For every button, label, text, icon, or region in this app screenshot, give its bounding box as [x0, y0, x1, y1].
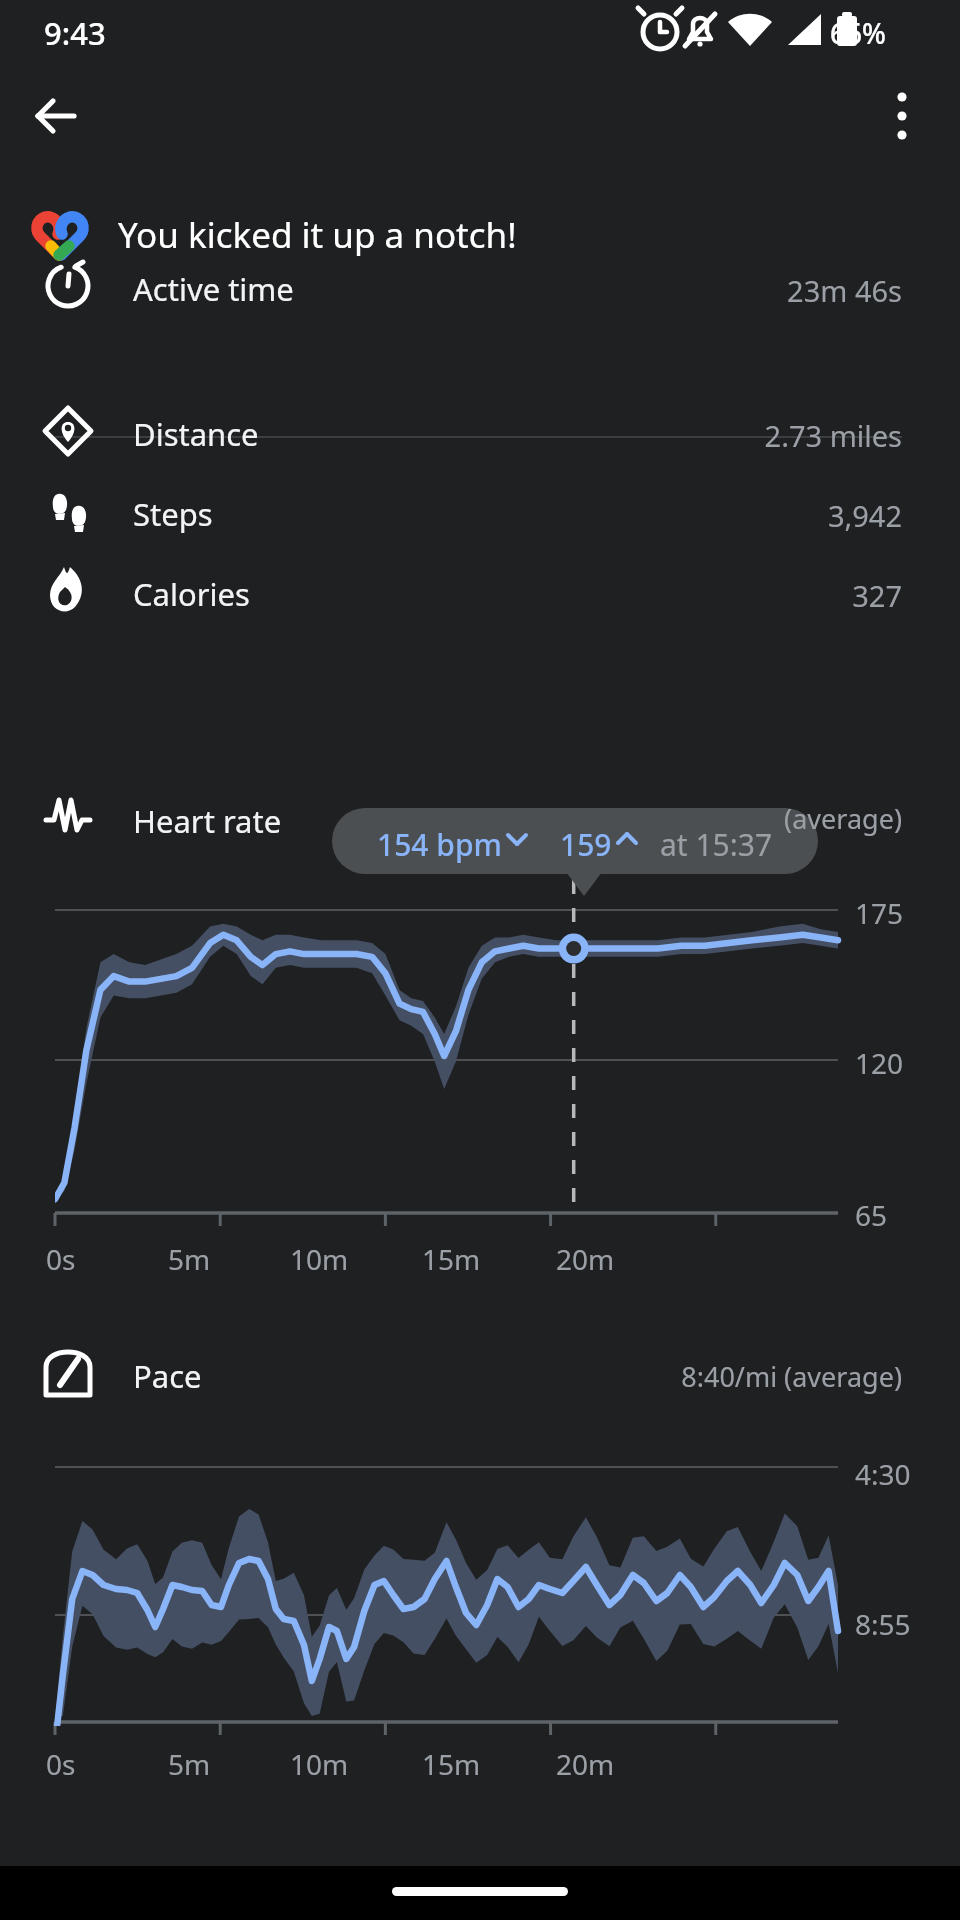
staticText: Calories — [133, 573, 250, 615]
staticText: 154 bpm — [377, 824, 502, 865]
staticText: 175 — [855, 894, 904, 932]
staticText: 5m — [168, 1745, 211, 1783]
staticText: Heart rate — [133, 800, 282, 842]
button[interactable] — [0, 246, 960, 324]
staticText: Distance — [133, 413, 259, 455]
button[interactable] — [0, 552, 960, 626]
staticText: 20m — [556, 1745, 615, 1783]
staticText: Steps — [133, 493, 213, 535]
button[interactable] — [0, 782, 960, 856]
staticText: 0s — [46, 1745, 76, 1783]
button[interactable] — [0, 472, 960, 546]
staticText: 15m — [422, 1240, 481, 1278]
staticText: 10m — [290, 1745, 349, 1783]
staticText: 65 — [855, 1196, 888, 1234]
button[interactable]: Heart rate 154 bpm at 15:37 — [332, 808, 818, 874]
staticText: (average) — [382, 800, 902, 837]
staticText: 159 — [560, 824, 612, 865]
staticText: 9:43 — [44, 12, 106, 54]
staticText: 327 — [382, 576, 902, 615]
staticText: 8:55 — [855, 1605, 911, 1643]
staticText: 5m — [168, 1240, 211, 1278]
button[interactable]: More options — [866, 78, 942, 154]
staticText: 2.73 miles — [382, 416, 902, 455]
button[interactable] — [0, 1338, 960, 1412]
staticText: 10m — [290, 1240, 349, 1278]
staticText: 120 — [855, 1044, 904, 1082]
staticText: 20m — [556, 1240, 615, 1278]
staticText: Pace — [133, 1355, 202, 1397]
button[interactable]: Navigate up — [18, 78, 94, 154]
staticText: Active time — [133, 268, 294, 310]
staticText: at 15:37 — [660, 824, 773, 865]
staticText: 0s — [46, 1240, 76, 1278]
staticText: 3,942 — [382, 496, 902, 535]
staticText: 15m — [422, 1745, 481, 1783]
staticText: 23m 46s — [382, 271, 902, 310]
staticText: You kicked it up a notch! — [118, 211, 517, 259]
button[interactable] — [0, 392, 960, 466]
staticText: 8:40/mi (average) — [382, 1358, 902, 1395]
staticText: 66% — [830, 14, 886, 52]
staticText: 4:30 — [855, 1455, 911, 1493]
